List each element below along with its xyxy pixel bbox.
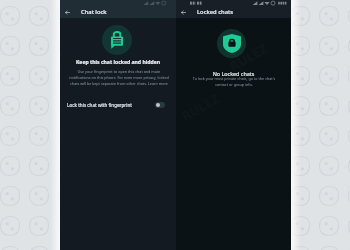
button[interactable]: Lock this chat with fingerprint (60, 99, 176, 111)
button[interactable]: Back (176, 5, 291, 18)
staticText: Use your fingerprint to open this chat a… (67, 69, 171, 86)
staticText: RULEZ (226, 39, 271, 75)
button[interactable]: Back (60, 5, 176, 18)
staticText: Locked chats (197, 8, 233, 16)
staticText: Lock this chat with fingerprint (67, 102, 133, 108)
button[interactable]: Back (177, 6, 189, 18)
staticText: No Locked chats (176, 70, 291, 77)
staticText: Keep this chat locked and hidden (60, 59, 176, 66)
staticText: To lock your most private chats, go to t… (189, 76, 279, 88)
button[interactable]: Back (61, 6, 73, 18)
staticText: Chat lock (81, 8, 107, 16)
